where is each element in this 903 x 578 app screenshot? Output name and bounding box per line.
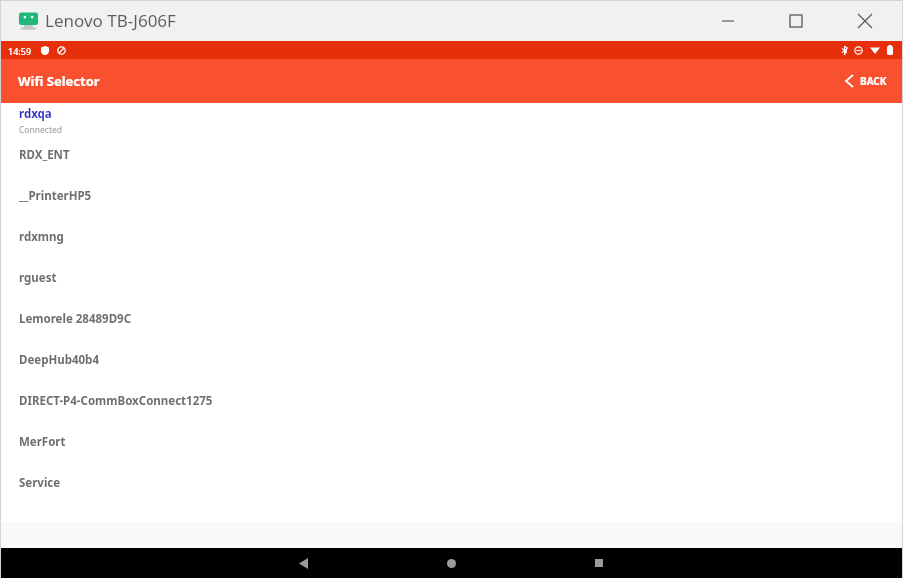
staticText: DeepHub40b4 (19, 352, 99, 368)
button[interactable]: MerFort (0, 421, 903, 462)
staticText: BACK (860, 74, 887, 88)
staticText: Lemorele 28489D9C (19, 311, 132, 327)
button[interactable]: Lemorele 28489D9C (0, 298, 903, 339)
button[interactable]: Home (429, 548, 474, 578)
button[interactable]: __PrinterHP5 (0, 175, 903, 216)
button[interactable]: Maximize (768, 0, 824, 41)
button[interactable]: rdxmng (0, 216, 903, 257)
staticText: rdxqa (19, 106, 52, 122)
button[interactable]: DIRECT-P4-CommBoxConnect1275 (0, 380, 903, 421)
button[interactable]: Recent apps (576, 548, 621, 578)
button[interactable]: Service (0, 462, 903, 503)
button[interactable]: Close (837, 0, 893, 41)
button[interactable]: DeepHub40b4 (0, 339, 903, 380)
button[interactable]: rguest (0, 257, 903, 298)
staticText: Connected (19, 124, 62, 136)
staticText: Service (19, 475, 61, 491)
button[interactable]: Back (281, 548, 326, 578)
staticText: rdxmng (19, 229, 64, 245)
staticText: __PrinterHP5 (19, 188, 92, 204)
staticText: MerFort (19, 434, 66, 450)
staticText: Lenovo TB-J606F (45, 9, 176, 32)
staticText: Wifi Selector (18, 72, 100, 90)
staticText: DIRECT-P4-CommBoxConnect1275 (19, 393, 213, 409)
button[interactable]: rdxqa (0, 103, 903, 144)
button[interactable]: BACK (840, 68, 893, 94)
button[interactable]: RDX_ENT (0, 134, 903, 175)
staticText: 14:59 (8, 45, 32, 57)
button[interactable]: Minimize (700, 0, 756, 41)
staticText: RDX_ENT (19, 147, 70, 163)
staticText: rguest (19, 270, 57, 286)
